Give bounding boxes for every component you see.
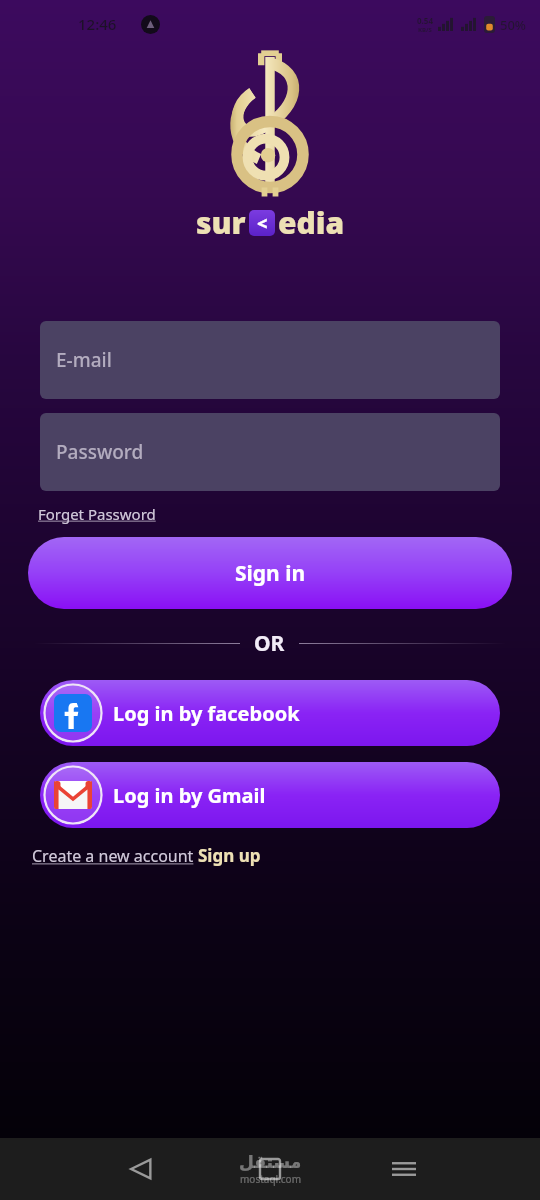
button[interactable]: Log in by facebook <box>40 680 500 746</box>
button[interactable]: Home <box>257 1156 283 1182</box>
button[interactable]: Forget Password <box>36 502 158 526</box>
staticText: OR <box>254 629 285 658</box>
staticText: Log in by Gmail <box>113 782 266 809</box>
staticText: sur <box>196 202 246 243</box>
staticText: Create a new account <box>32 845 198 867</box>
staticText: < <box>257 211 268 236</box>
staticText: edia <box>278 202 345 243</box>
staticText: 50% <box>500 16 526 34</box>
button[interactable]: Sign in <box>28 537 512 609</box>
staticText: مستقل <box>239 1152 302 1172</box>
staticText: Log in by facebook <box>113 700 300 727</box>
staticText: 12:46 <box>78 14 117 34</box>
button[interactable]: Password <box>40 413 500 491</box>
staticText: mostaql.com <box>240 1172 302 1186</box>
button[interactable]: Create a new account <box>30 842 263 869</box>
button[interactable]: Recent apps <box>392 1157 416 1181</box>
staticText: Sign in <box>235 559 306 588</box>
button[interactable]: Back <box>128 1156 154 1182</box>
button[interactable]: Log in by Gmail <box>40 762 500 828</box>
staticText: Forget Password <box>38 504 156 524</box>
staticText: 0.54 <box>417 15 433 26</box>
staticText: KB/S <box>418 26 432 34</box>
staticText: E-mail <box>56 347 112 373</box>
staticText: Password <box>56 439 144 465</box>
button[interactable]: E-mail <box>40 321 500 399</box>
staticText: Sign up <box>198 844 261 867</box>
